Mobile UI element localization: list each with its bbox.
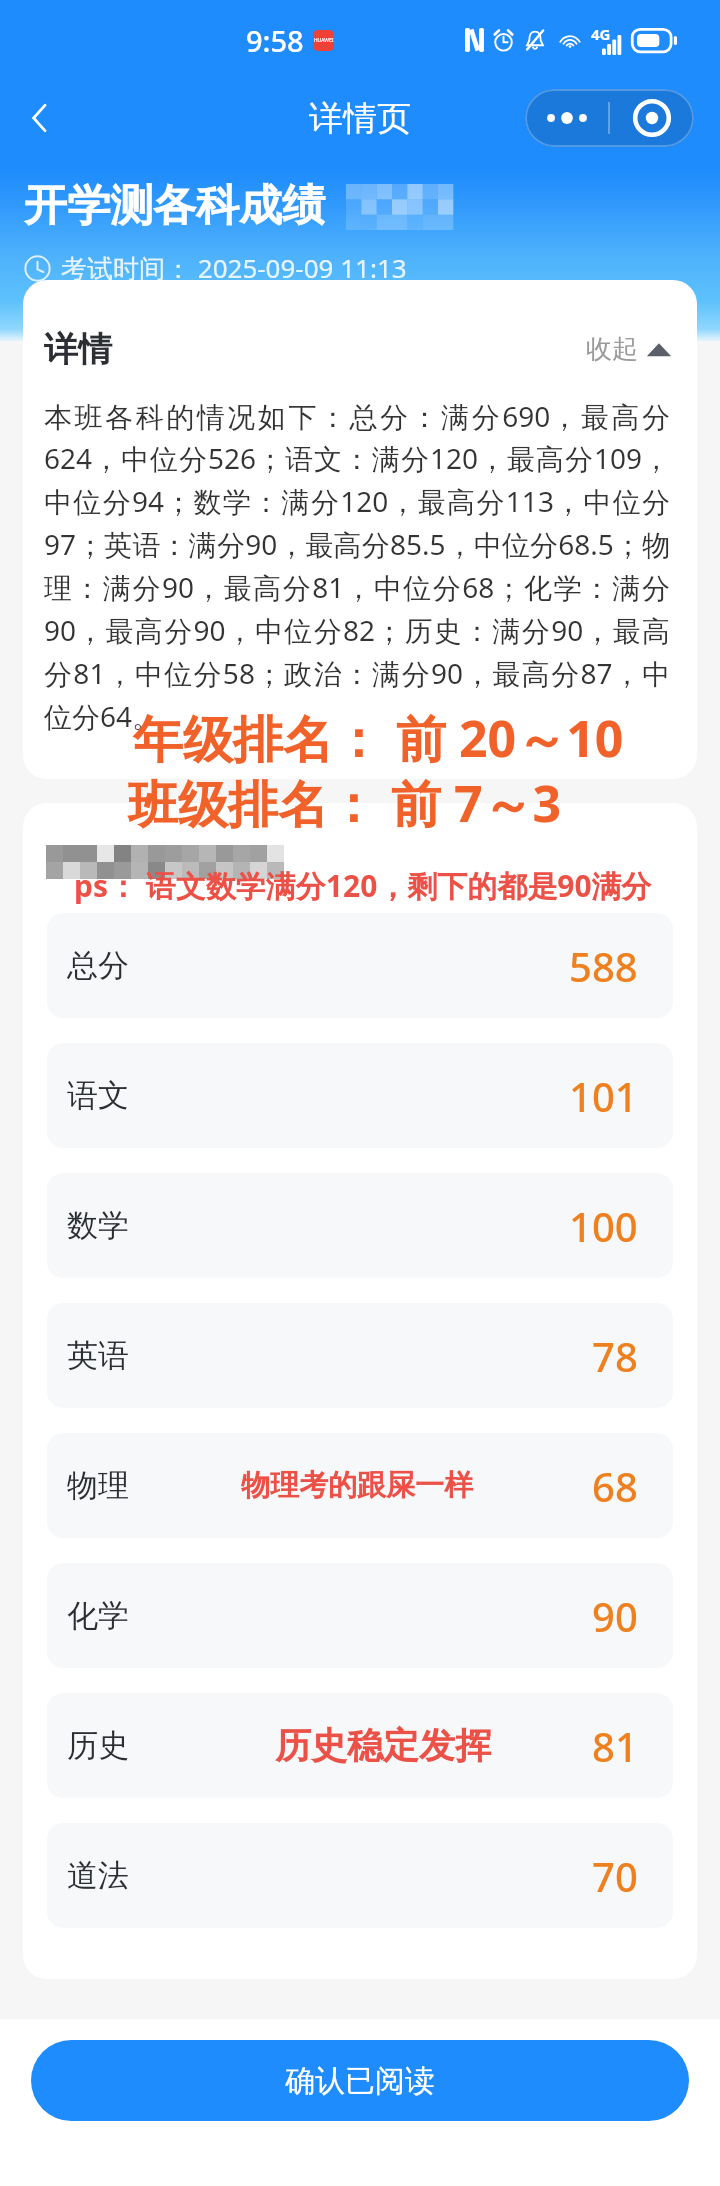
staticText: 收起 [586,333,638,366]
button[interactable]: 确认已阅读 [31,2040,689,2121]
staticText: 物理考的跟屎一样 [241,1467,473,1504]
staticText: 化学 [67,1596,129,1635]
staticText: 年级排名： 前 20～10 [133,704,624,772]
button[interactable]: Close [610,89,694,147]
staticText: 详情页 [309,97,411,140]
staticText: 本班各科的情况如下：总分：满分690，最高分624，中位分526；语文：满分12… [44,397,670,736]
staticText: 4G [591,24,611,44]
button[interactable]: 物理 [47,1433,673,1538]
button[interactable]: 总分 [47,913,673,1018]
button[interactable]: 道法 [47,1823,673,1928]
staticText: 班级排名： 前 7～3 [128,769,562,837]
button[interactable]: 收起 [586,333,669,366]
staticText: 81 [592,1719,638,1773]
staticText: 68 [592,1459,638,1513]
staticText: ps： 语文数学满分120，剩下的都是90满分 [74,865,652,906]
button[interactable]: 数学 [47,1173,673,1278]
staticText: 总分 [67,946,129,985]
staticText: 588 [569,939,638,993]
staticText: 101 [569,1069,638,1123]
staticText: 语文 [67,1076,129,1115]
staticText: 详情 [44,328,112,371]
staticText: 数学 [67,1206,129,1245]
staticText: HUAWEI [314,37,334,44]
button[interactable]: More options [525,89,608,147]
button[interactable]: Back [12,90,68,146]
staticText: 考试时间： 2025-09-09 11:13 [61,250,407,286]
staticText: 78 [592,1329,638,1383]
button[interactable]: 化学 [47,1563,673,1668]
staticText: 历史 [67,1726,129,1765]
staticText: 开学测各科成绩 [24,179,325,233]
staticText: 90 [592,1589,638,1643]
button[interactable]: 英语 [47,1303,673,1408]
staticText: 道法 [67,1856,129,1895]
staticText: 100 [569,1199,638,1253]
staticText: 物理 [67,1466,129,1505]
staticText: 70 [592,1849,638,1903]
staticText: 确认已阅读 [285,2062,435,2100]
staticText: 英语 [67,1336,129,1375]
staticText: 9:58 [246,21,304,60]
button[interactable]: 历史 [47,1693,673,1798]
staticText: 历史稳定发挥 [275,1723,491,1768]
button[interactable]: 语文 [47,1043,673,1148]
